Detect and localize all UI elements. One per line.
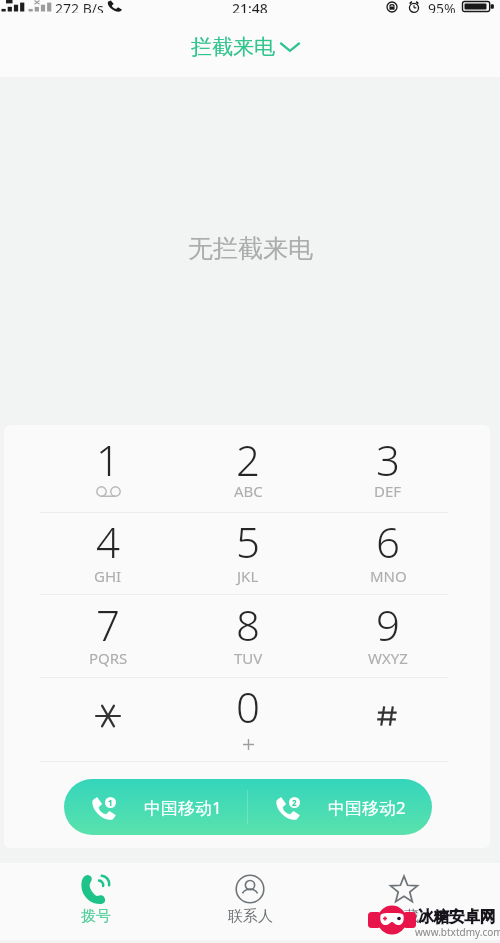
staticText: TUV <box>234 648 263 668</box>
button[interactable]: 7 <box>38 595 178 677</box>
staticText: 2 <box>236 431 260 488</box>
button[interactable] <box>318 678 458 761</box>
staticText: ABC <box>234 481 263 501</box>
staticText: MNO <box>370 566 407 586</box>
staticText: 联系人 <box>228 907 273 926</box>
button[interactable]: 9 <box>318 595 458 677</box>
staticText: 收藏 <box>389 907 419 926</box>
button[interactable]: 收藏 <box>327 863 481 940</box>
button[interactable]: 3 <box>318 425 458 512</box>
staticText: 1 <box>108 797 113 808</box>
button[interactable]: 1 <box>38 425 178 512</box>
button[interactable]: 6 <box>318 513 458 594</box>
staticText: WXYZ <box>368 648 408 668</box>
staticText: 9 <box>376 596 400 653</box>
staticText: JKL <box>237 566 259 586</box>
staticText: www.btxtdmy.com <box>415 925 500 939</box>
staticText: 冰糖安卓网 <box>418 907 496 927</box>
staticText: 1 <box>96 431 120 488</box>
button[interactable]: 2 <box>178 425 318 512</box>
staticText: 7 <box>96 596 120 653</box>
button[interactable]: 5 <box>178 513 318 594</box>
button[interactable] <box>38 678 178 761</box>
staticText: 272 B/s <box>55 0 104 13</box>
button[interactable]: 拦截来电 <box>179 26 312 68</box>
staticText: 4 <box>96 513 120 570</box>
staticText: 0 <box>236 678 260 735</box>
staticText: 拦截来电 <box>191 34 275 60</box>
staticText: 21:48 <box>232 0 268 13</box>
staticText: 8 <box>236 596 260 653</box>
staticText: GHI <box>94 566 122 586</box>
staticText: 6 <box>376 513 400 570</box>
staticText: 中国移动1 <box>144 796 222 819</box>
staticText: 95% <box>428 0 456 13</box>
button[interactable]: 1 <box>64 779 247 835</box>
staticText: 拨号 <box>81 907 111 926</box>
staticText: 3 <box>376 431 400 488</box>
button[interactable]: 2 <box>248 779 432 835</box>
staticText: 无拦截来电 <box>188 233 313 264</box>
button[interactable]: 8 <box>178 595 318 677</box>
staticText: DEF <box>374 481 402 501</box>
staticText: 2 <box>292 797 297 808</box>
button[interactable]: 0 <box>178 678 318 761</box>
staticText: PQRS <box>89 648 128 668</box>
staticText: 中国移动2 <box>328 796 406 819</box>
button[interactable]: 联系人 <box>173 863 327 940</box>
button[interactable]: 拨号 <box>19 863 173 940</box>
button[interactable]: 4 <box>38 513 178 594</box>
staticText: 5 <box>236 513 260 570</box>
